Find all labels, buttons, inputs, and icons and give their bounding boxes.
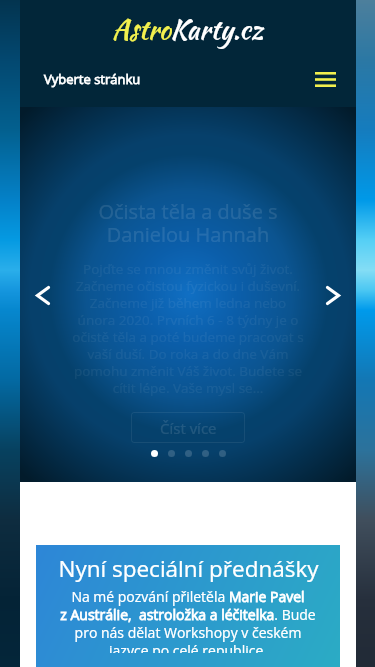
staticText: Vyberte stránku	[44, 70, 141, 88]
button[interactable]: Slide 2	[168, 450, 175, 457]
staticText: Očista těla a duše s Danielou Hannah	[98, 198, 278, 248]
button[interactable]: Slide 1	[151, 450, 158, 457]
staticText: Číst více	[160, 418, 217, 438]
button[interactable]: Next slide	[315, 277, 351, 313]
staticText: Nyní speciální přednášky	[58, 553, 319, 584]
button[interactable]: Vyberte stránku	[42, 63, 143, 95]
button[interactable]: Slide 5	[219, 450, 226, 457]
staticText: AstroKarty.cz	[112, 10, 264, 49]
staticText: Na mé pozvání přiletěla Marie Pavel z Au…	[60, 587, 316, 653]
staticText: Pojďte se mnou změnit svůj život. Začnem…	[72, 260, 304, 397]
button[interactable]: Previous slide	[25, 277, 61, 313]
button[interactable]: Číst více	[131, 412, 245, 443]
button[interactable]: Slide 4	[202, 450, 209, 457]
button[interactable]: Menu	[308, 62, 342, 96]
button[interactable]: Slide 3	[185, 450, 192, 457]
